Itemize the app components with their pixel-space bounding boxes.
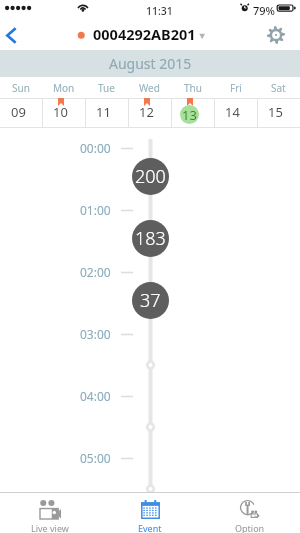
button[interactable]: 37: [132, 282, 169, 319]
staticText: Sun: [12, 81, 30, 95]
staticText: 13: [182, 106, 197, 124]
staticText: Thu: [184, 81, 202, 95]
button[interactable]: 183: [132, 220, 169, 257]
button[interactable]: Event: [100, 493, 200, 533]
staticText: Sat: [271, 81, 286, 95]
staticText: 183: [135, 226, 166, 251]
staticText: August 2015: [109, 54, 192, 73]
button[interactable]: 12: [128, 99, 171, 127]
button[interactable]: Option: [200, 493, 300, 533]
staticText: Event: [138, 522, 162, 533]
staticText: 11: [96, 103, 111, 121]
button[interactable]: Live view: [0, 493, 100, 533]
staticText: 15: [268, 103, 283, 121]
button[interactable]: 10: [42, 99, 85, 127]
staticText: Option: [235, 522, 265, 533]
staticText: 01:00: [80, 202, 111, 218]
button[interactable]: 13: [171, 99, 214, 127]
staticText: 37: [140, 288, 161, 313]
button[interactable]: 15: [257, 99, 300, 127]
staticText: 05:00: [80, 450, 111, 466]
button[interactable]: 14: [214, 99, 257, 127]
button[interactable]: 09: [0, 99, 42, 127]
staticText: Live view: [31, 522, 69, 533]
button[interactable]: 200: [132, 158, 169, 195]
staticText: 200: [135, 164, 166, 189]
staticText: 14: [225, 103, 240, 121]
staticText: 79%: [253, 3, 275, 18]
staticText: 10: [53, 103, 68, 121]
staticText: 04:00: [80, 388, 111, 404]
staticText: 0004292AB201: [93, 24, 196, 44]
staticText: 02:00: [80, 264, 111, 280]
staticText: 12: [139, 103, 154, 121]
staticText: 09: [11, 103, 26, 121]
staticText: 00:00: [80, 140, 111, 156]
button[interactable]: Back: [0, 22, 34, 50]
staticText: Mon: [53, 81, 75, 95]
staticText: 03:00: [80, 326, 111, 342]
staticText: Fri: [230, 81, 242, 95]
button[interactable]: 11: [85, 99, 128, 127]
button[interactable]: 0004292AB201: [74, 22, 210, 50]
staticText: Tue: [98, 81, 115, 95]
button[interactable]: Settings: [266, 22, 300, 50]
staticText: 11:31: [146, 4, 173, 18]
staticText: Wed: [139, 81, 160, 95]
